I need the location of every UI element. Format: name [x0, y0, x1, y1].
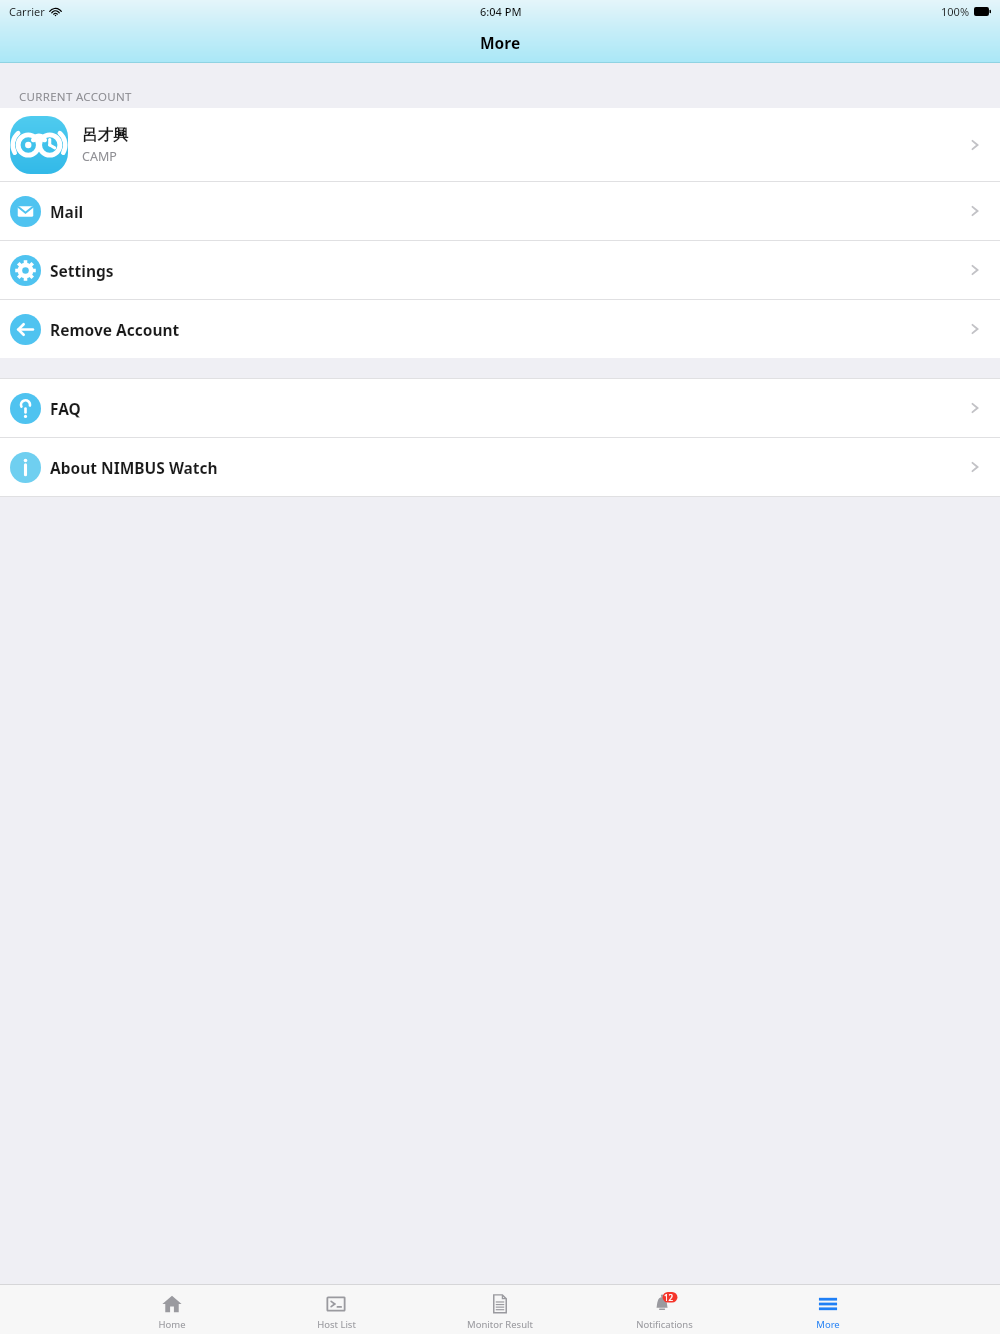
staticText: CAMP	[82, 148, 117, 165]
button[interactable]: Host List	[254, 1288, 418, 1331]
staticText: Mail	[50, 201, 84, 222]
staticText: Host List	[317, 1318, 356, 1331]
staticText: CURRENT ACCOUNT	[19, 89, 132, 105]
staticText: About NIMBUS Watch	[50, 457, 218, 478]
staticText: 6:04 PM	[480, 4, 522, 19]
staticText: Remove Account	[50, 319, 180, 340]
staticText: More	[816, 1318, 840, 1331]
button[interactable]: 呂才興	[0, 108, 1000, 181]
staticText: 100%	[941, 4, 970, 19]
button[interactable]: About NIMBUS Watch	[0, 438, 1000, 496]
staticText: More	[480, 32, 521, 53]
staticText: Settings	[50, 260, 114, 281]
staticText: Monitor Result	[467, 1318, 533, 1331]
staticText: Home	[158, 1318, 186, 1331]
button[interactable]: Monitor Result	[418, 1288, 582, 1331]
button[interactable]: Mail	[0, 182, 1000, 240]
staticText: 呂才興	[82, 125, 129, 145]
staticText: 12	[664, 1292, 674, 1303]
staticText: FAQ	[50, 398, 81, 419]
button[interactable]: Settings	[0, 241, 1000, 299]
button[interactable]: FAQ	[0, 379, 1000, 437]
staticText: Carrier	[9, 4, 45, 19]
staticText: Notifications	[636, 1318, 693, 1331]
button[interactable]: Home	[90, 1288, 254, 1331]
button[interactable]: 12	[582, 1288, 746, 1331]
button[interactable]: Remove Account	[0, 300, 1000, 358]
button[interactable]: More	[746, 1288, 910, 1331]
